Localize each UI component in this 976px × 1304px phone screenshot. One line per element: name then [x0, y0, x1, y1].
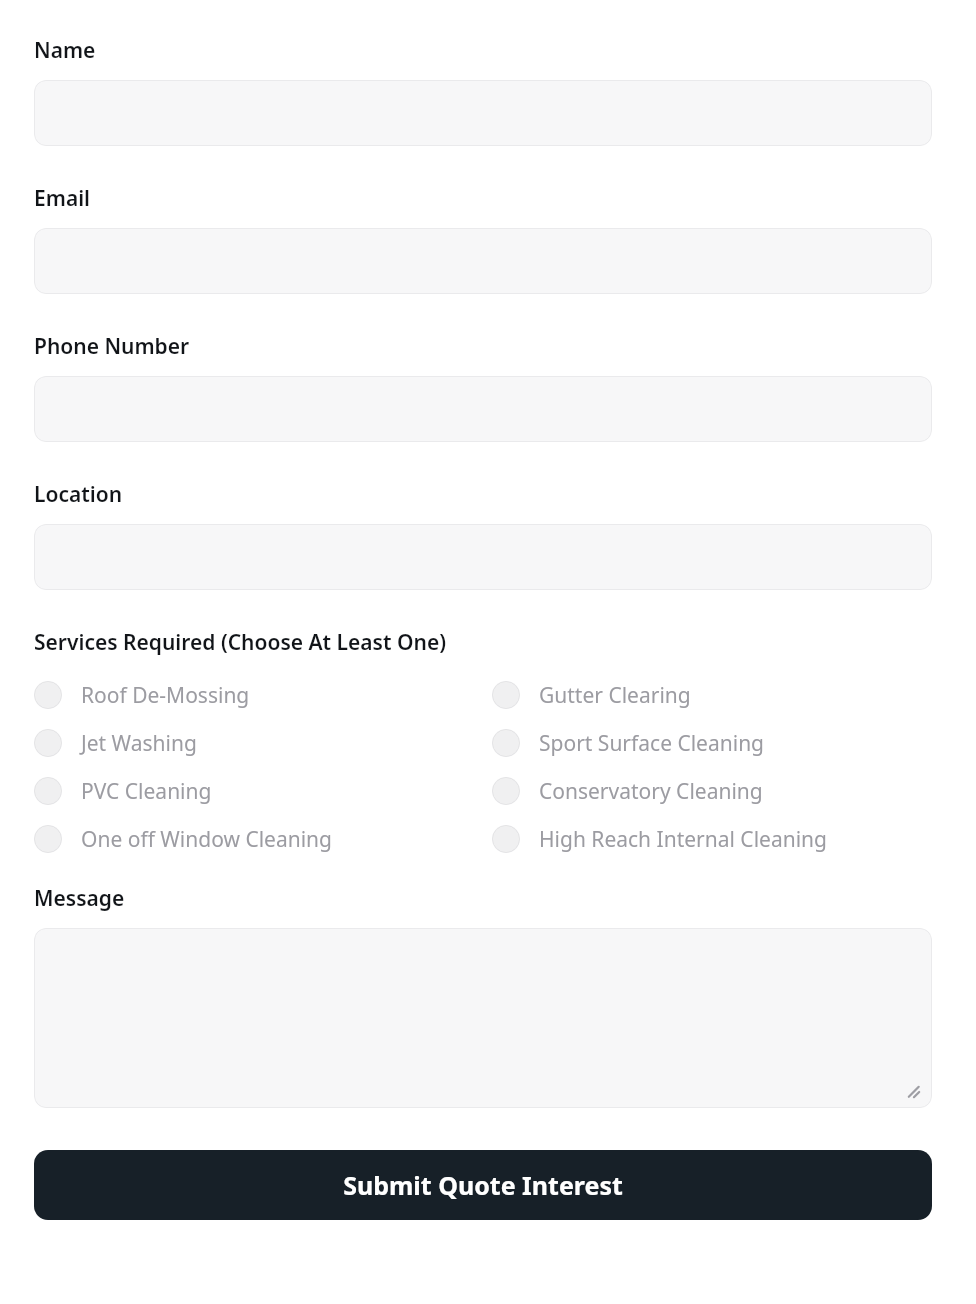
button[interactable]: Roof De-Mossing — [34, 671, 250, 719]
staticText: Submit Quote Interest — [343, 1168, 623, 1202]
staticText: Jet Washing — [81, 729, 197, 758]
button[interactable]: Sport Surface Cleaning — [492, 719, 765, 767]
staticText: Roof De-Mossing — [81, 681, 250, 710]
staticText: Sport Surface Cleaning — [539, 729, 765, 758]
staticText: Conservatory Cleaning — [539, 777, 763, 806]
staticText: Location — [34, 480, 123, 509]
button[interactable]: High Reach Internal Cleaning — [492, 815, 827, 863]
staticText: Message — [34, 884, 125, 913]
button[interactable]: One off Window Cleaning — [34, 815, 332, 863]
button[interactable]: Jet Washing — [34, 719, 197, 767]
staticText: Email — [34, 184, 91, 213]
button[interactable]: Submit Quote Interest — [34, 1150, 932, 1220]
button[interactable]: Conservatory Cleaning — [492, 767, 763, 815]
staticText: One off Window Cleaning — [81, 825, 332, 854]
staticText: Phone Number — [34, 332, 190, 361]
button[interactable]: PVC Cleaning — [34, 767, 212, 815]
staticText: High Reach Internal Cleaning — [539, 825, 827, 854]
staticText: Gutter Clearing — [539, 681, 691, 710]
staticText: PVC Cleaning — [81, 777, 212, 806]
staticText: Services Required (Choose At Least One) — [34, 628, 446, 657]
button[interactable]: Gutter Clearing — [492, 671, 691, 719]
staticText: Name — [34, 36, 96, 65]
